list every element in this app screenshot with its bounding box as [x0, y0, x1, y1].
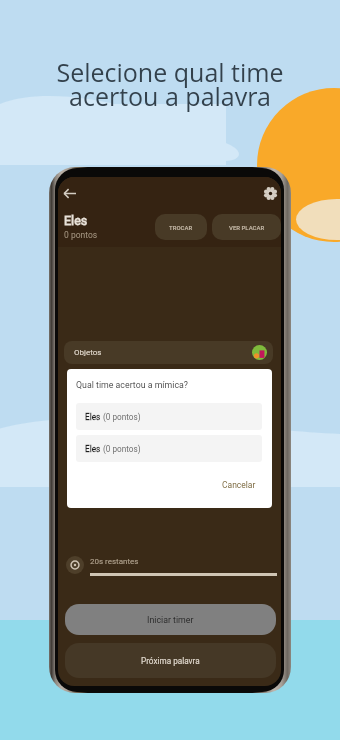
staticText: Eles	[85, 444, 103, 454]
button[interactable]: VER PLACAR	[212, 214, 281, 240]
staticText: Eles	[85, 412, 103, 422]
button[interactable]: Objetos	[64, 341, 273, 364]
staticText: Eles	[64, 213, 88, 228]
button[interactable]: Voltar	[59, 183, 80, 204]
button[interactable]: Eles	[76, 435, 262, 462]
button[interactable]: Configurações	[260, 183, 281, 204]
staticText: Objetos	[74, 348, 102, 357]
staticText: TROCAR	[169, 224, 193, 231]
staticText: (0 pontos)	[103, 412, 141, 422]
button[interactable]: TROCAR	[155, 214, 207, 240]
staticText: Próxima palavra	[141, 656, 200, 666]
button[interactable]: Iniciar timer	[65, 604, 276, 635]
button[interactable]: Próxima palavra	[65, 643, 276, 678]
staticText: Selecione qual time acertou a palavra	[0, 55, 340, 113]
staticText: Iniciar timer	[147, 615, 194, 625]
button[interactable]: Eles	[76, 403, 262, 430]
staticText: Cancelar	[222, 480, 256, 490]
button[interactable]: Cancelar	[215, 476, 263, 494]
staticText: (0 pontos)	[103, 444, 141, 454]
staticText: 20s restantes	[90, 557, 139, 566]
staticText: 0 pontos	[64, 230, 98, 240]
staticText: Qual time acertou a mímica?	[76, 380, 188, 390]
staticText: VER PLACAR	[229, 224, 265, 231]
